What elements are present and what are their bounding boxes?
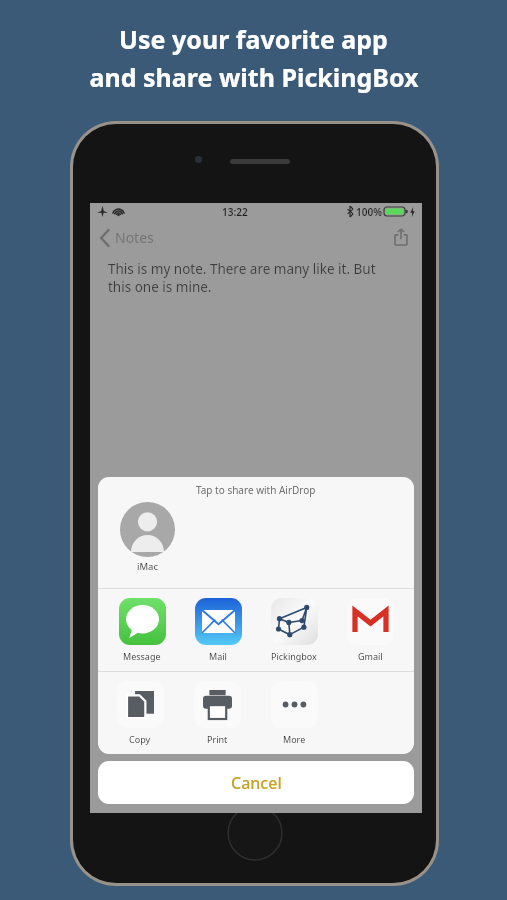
button[interactable]: Pickingbox [262, 598, 326, 662]
button[interactable]: Print [185, 681, 249, 745]
staticText: Copy [129, 733, 151, 745]
staticText: Pickingbox [271, 650, 317, 662]
staticText: Use your favorite app [119, 22, 388, 56]
staticText: This is my note. There are many like it.… [108, 260, 376, 278]
button[interactable]: Home [227, 805, 283, 861]
staticText: 100% [356, 205, 382, 219]
staticText: this one is mine. [108, 278, 212, 296]
staticText: Notes [115, 228, 154, 247]
staticText: iMac [137, 560, 158, 573]
button[interactable]: iMac [120, 502, 175, 573]
staticText: Cancel [231, 772, 282, 794]
button[interactable]: Back to Notes [98, 224, 156, 251]
staticText: and share with PickingBox [89, 60, 419, 94]
button[interactable]: Gmail [338, 598, 402, 662]
button[interactable]: Cancel [98, 761, 414, 804]
button[interactable]: Mail [186, 598, 250, 662]
staticText: Mail [209, 650, 227, 662]
button[interactable]: Copy [108, 681, 172, 745]
staticText: Tap to share with AirDrop [196, 483, 316, 497]
staticText: Gmail [358, 650, 383, 662]
staticText: 13:22 [222, 205, 248, 219]
staticText: Print [207, 733, 228, 745]
button[interactable]: More [262, 681, 326, 745]
button[interactable]: Message [110, 598, 174, 662]
staticText: Message [123, 650, 161, 662]
staticText: More [283, 733, 306, 745]
button[interactable]: Share [388, 224, 414, 250]
